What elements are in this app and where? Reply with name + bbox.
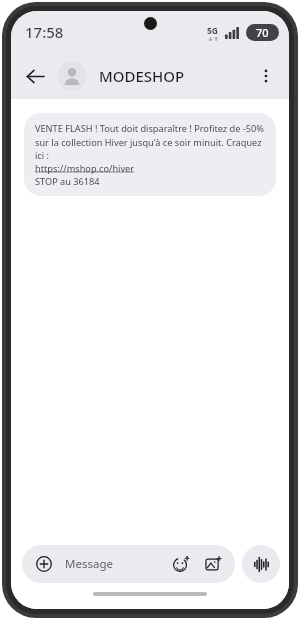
button[interactable]: More options (249, 59, 283, 93)
button[interactable]: Attach image (201, 552, 225, 576)
staticText: Message (65, 556, 113, 572)
button[interactable]: Record audio message (242, 545, 280, 583)
button[interactable]: Add attachment (22, 545, 235, 583)
staticText: VENTE FLASH ! Tout doit disparaître ! Pr… (35, 122, 265, 187)
button[interactable]: Contact avatar (57, 61, 87, 91)
button[interactable]: Emoji (169, 552, 193, 576)
staticText: 5G (207, 25, 219, 37)
staticText: MODESHOP (99, 66, 249, 86)
button[interactable]: Back (17, 58, 53, 94)
staticText: 70 (256, 25, 269, 40)
staticText: 17:58 (25, 22, 64, 42)
button[interactable]: Add attachment (32, 552, 56, 576)
button[interactable]: VENTE FLASH ! Tout doit disparaître ! Pr… (24, 113, 276, 196)
